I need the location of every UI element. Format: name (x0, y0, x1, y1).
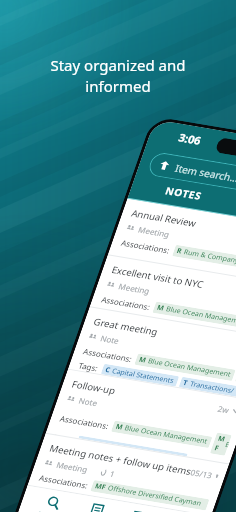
staticText: 3:06 (172, 121, 208, 156)
other: Expand (230, 405, 236, 418)
staticText: Notes (78, 509, 107, 512)
staticText: Stay organized and informed (0, 55, 236, 97)
staticText: Blue Ocean Management (120, 391, 212, 479)
staticText: Annual Review (125, 181, 202, 255)
button[interactable]: More (145, 499, 208, 512)
staticText: Associations: (96, 274, 156, 331)
button[interactable]: Filter (138, 86, 236, 267)
staticText: Transactions/Calls - Activity (186, 358, 236, 418)
staticText: Tags: (73, 352, 104, 381)
other: Expand (213, 472, 221, 480)
staticText: C (101, 363, 115, 376)
staticText: Item search... (169, 136, 236, 210)
staticText: Note (95, 325, 125, 353)
staticText: NOTES (159, 169, 209, 217)
staticText: Capital Statements (108, 342, 179, 410)
staticText: Associations: (34, 453, 93, 510)
other: Filter (156, 157, 173, 174)
staticText: Associations: (78, 326, 137, 383)
staticText: Search (32, 501, 65, 512)
staticText: M (81, 434, 89, 442)
button[interactable]: Tasks (105, 493, 168, 512)
staticText: Excellent visit to NYC (106, 227, 210, 327)
staticText: Rum & Company (179, 225, 236, 288)
button[interactable]: Annual Review (88, 126, 236, 358)
button[interactable]: Meeting notes + follow up items (9, 361, 236, 512)
staticText: Great meeting (88, 290, 164, 364)
staticText: Follow-up (66, 360, 122, 414)
staticText: M (152, 300, 169, 316)
staticText: MF (207, 430, 235, 458)
staticText: Blue Ocean Management (143, 324, 236, 412)
staticText: M (111, 419, 128, 435)
staticText: Note (74, 387, 103, 416)
staticText: Meeting (133, 211, 176, 252)
staticText: 1 (105, 466, 120, 481)
staticText: M (134, 352, 151, 368)
staticText: Meeting (51, 446, 94, 487)
button[interactable]: Follow-up (23, 297, 236, 512)
staticText: Meetings & Conference Calls (90, 401, 185, 492)
staticText: M (235, 369, 236, 385)
staticText: 2w (213, 399, 234, 420)
staticText: Meeting (113, 268, 156, 309)
staticText: Associations: (116, 218, 175, 275)
staticText: 05/13 (185, 458, 218, 489)
button[interactable]: NOTES (159, 169, 209, 217)
button[interactable]: Great meeting (46, 235, 236, 473)
staticText: R (172, 244, 187, 258)
staticText: Offshore Diversified Cayman Ltd (103, 445, 209, 512)
staticText: Tags: (54, 424, 76, 445)
staticText: Meeting notes + follow up items (43, 386, 197, 512)
button[interactable]: Excellent visit to NYC (71, 183, 236, 410)
staticText: T (179, 376, 193, 389)
staticText: Blue Ocean Management (161, 272, 236, 360)
button[interactable]: Notes (62, 485, 128, 512)
staticText: Associations: (55, 393, 114, 450)
staticText: MF (90, 477, 111, 497)
button[interactable]: Search (17, 476, 85, 512)
